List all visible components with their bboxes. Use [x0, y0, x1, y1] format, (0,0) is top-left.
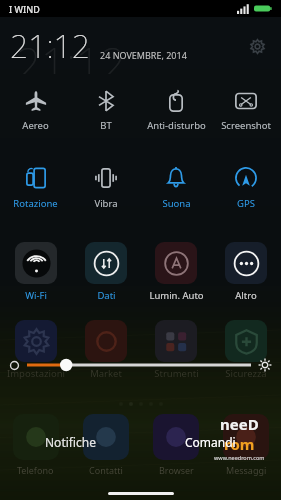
- button[interactable]: Messaggi: [211, 414, 281, 476]
- button[interactable]: Strumenti: [141, 320, 211, 380]
- staticText: Screenshot: [221, 119, 271, 132]
- staticText: www.needrom.com: [214, 454, 265, 461]
- button[interactable]: GPS: [211, 160, 281, 216]
- staticText: Browser: [159, 464, 194, 476]
- button[interactable]: Notifiche: [0, 434, 140, 450]
- button[interactable]: Screenshot: [211, 84, 281, 138]
- staticText: BT: [100, 119, 112, 132]
- staticText: GPS: [237, 197, 255, 210]
- staticText: Wi-Fi: [25, 289, 47, 302]
- staticText: Anti-disturbo: [147, 119, 206, 132]
- staticText: 21:12: [16, 33, 126, 74]
- staticText: Telefono: [17, 464, 54, 476]
- staticText: 24 NOVEMBRE, 2014: [100, 49, 187, 61]
- button[interactable]: Telefono: [0, 414, 71, 476]
- staticText: neeD: [220, 414, 259, 434]
- button[interactable]: Comandi: [140, 434, 281, 450]
- staticText: Impostazioni: [7, 367, 65, 380]
- button[interactable]: Impostazioni: [0, 320, 71, 380]
- button[interactable]: Aereo: [0, 84, 71, 138]
- staticText: Messaggi: [226, 464, 267, 476]
- button[interactable]: BT: [71, 84, 141, 138]
- button[interactable]: Market: [71, 320, 141, 380]
- button[interactable]: Anti-disturbo: [141, 84, 211, 138]
- button[interactable]: Browser: [141, 414, 211, 476]
- staticText: 21:12: [10, 24, 91, 68]
- staticText: Vibra: [94, 197, 118, 210]
- button[interactable]: Suona: [141, 160, 211, 216]
- staticText: Contatti: [89, 464, 123, 476]
- staticText: Altro: [235, 289, 257, 302]
- button[interactable]: Contatti: [71, 414, 141, 476]
- staticText: Rotazione: [13, 197, 58, 210]
- staticText: Aereo: [22, 119, 49, 132]
- staticText: Strumenti: [154, 367, 199, 380]
- button[interactable]: Settings: [244, 33, 270, 59]
- staticText: Sicurezza: [225, 367, 267, 380]
- staticText: Lumin. Auto: [149, 289, 204, 302]
- button[interactable]: Sicurezza: [211, 320, 281, 380]
- staticText: Dati: [97, 289, 116, 302]
- button[interactable]: Close panel: [0, 486, 281, 500]
- button[interactable]: Vibra: [71, 160, 141, 216]
- button[interactable]: Rotazione: [0, 160, 71, 216]
- staticText: Notifiche: [45, 434, 96, 450]
- staticText: rom: [224, 434, 255, 454]
- button[interactable]: Brightness: [9, 354, 272, 376]
- button[interactable]: Wi-Fi: [0, 242, 71, 302]
- staticText: I WIND: [9, 3, 40, 15]
- button[interactable]: Dati: [71, 242, 141, 302]
- staticText: Suona: [162, 197, 191, 210]
- button[interactable]: Lumin. Auto: [141, 242, 211, 302]
- staticText: Market: [90, 367, 122, 380]
- staticText: Comandi: [185, 434, 236, 450]
- button[interactable]: Altro: [211, 242, 281, 302]
